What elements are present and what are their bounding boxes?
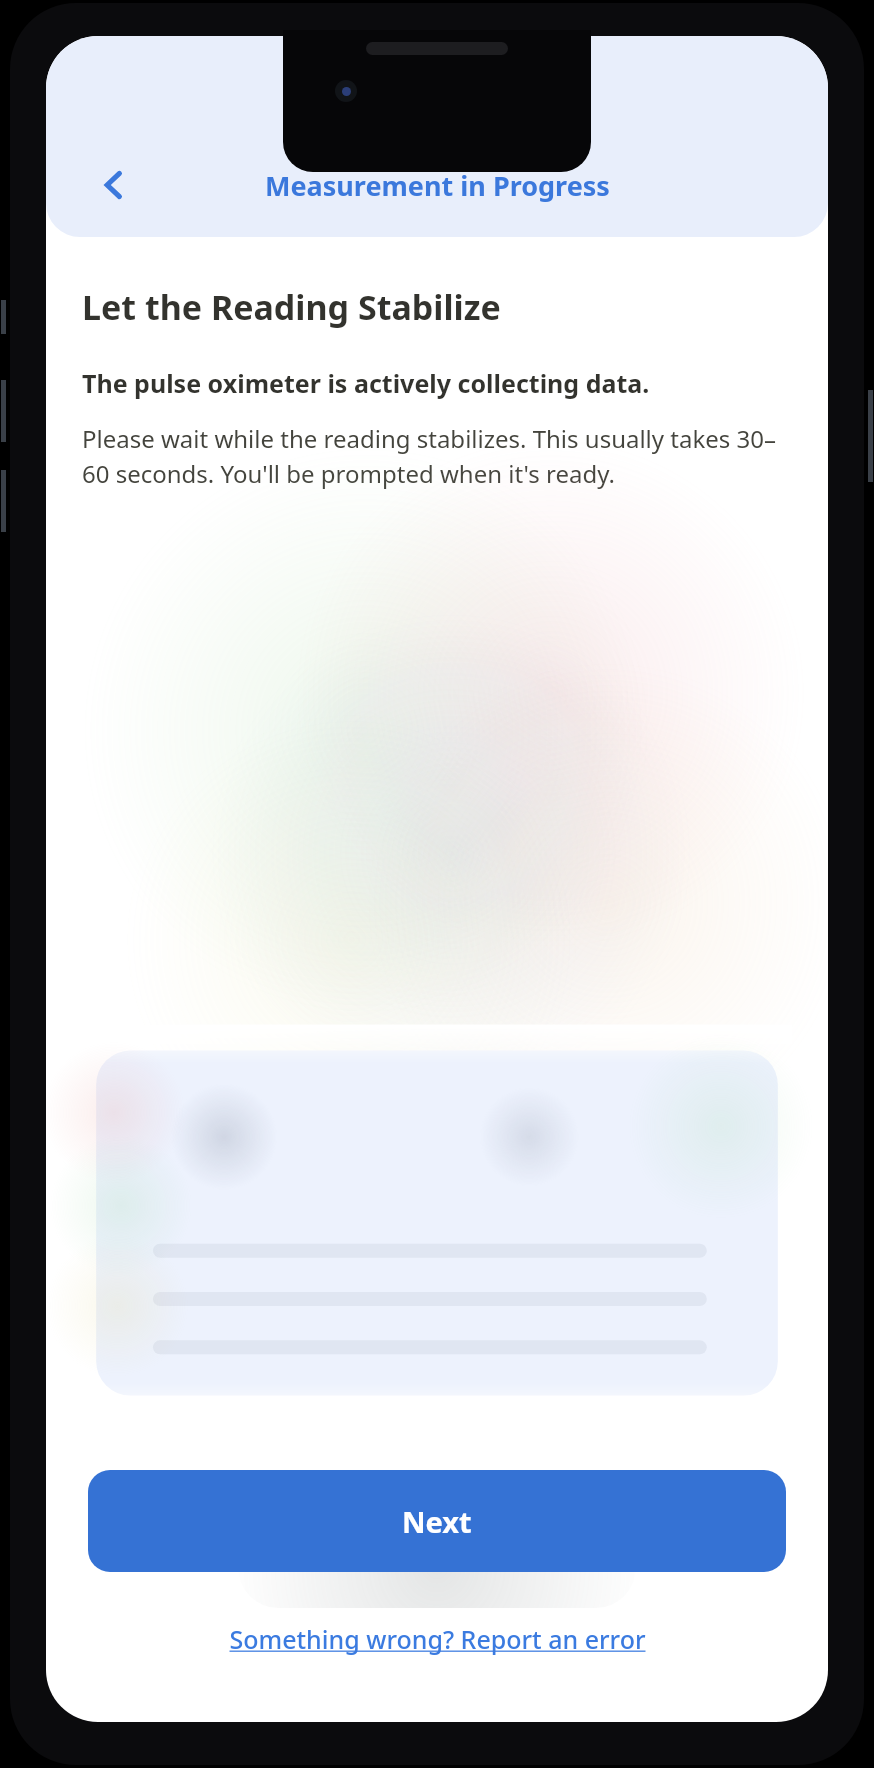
staticText: Measurement in Progress	[265, 167, 610, 204]
staticText: Something wrong? Report an error	[229, 1622, 646, 1656]
staticText: Next	[402, 1502, 472, 1541]
staticText: The pulse oximeter is actively collectin…	[82, 366, 650, 400]
button[interactable]: Back	[86, 157, 142, 213]
button[interactable]: Next	[88, 1470, 786, 1572]
staticText: Let the Reading Stabilize	[82, 284, 501, 330]
staticText: Please wait while the reading stabilizes…	[82, 422, 792, 490]
button[interactable]: Something wrong? Report an error	[221, 1618, 654, 1660]
